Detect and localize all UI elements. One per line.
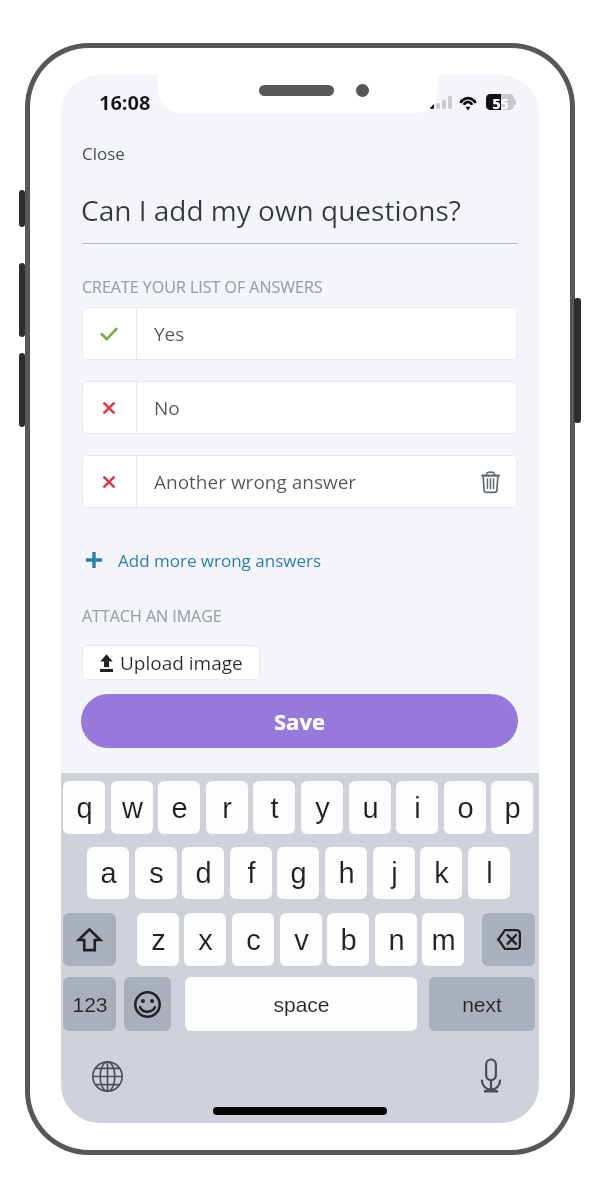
staticText: Another wrong answer <box>154 469 357 495</box>
button[interactable]: Voice input <box>471 1056 511 1096</box>
staticText: r <box>222 792 232 824</box>
button[interactable]: w <box>111 781 153 834</box>
staticText: m <box>431 924 456 956</box>
button[interactable]: Another wrong answer <box>82 455 517 508</box>
button[interactable]: space <box>185 977 417 1031</box>
button[interactable]: 123 <box>63 977 116 1031</box>
button[interactable]: o <box>444 781 486 834</box>
staticText: e <box>171 792 188 824</box>
staticText: d <box>195 857 212 889</box>
staticText: l <box>486 857 493 889</box>
staticText: c <box>246 924 261 956</box>
button[interactable]: Shift <box>63 913 116 966</box>
button[interactable]: t <box>253 781 295 834</box>
button[interactable]: d <box>182 847 224 899</box>
staticText: i <box>414 792 421 824</box>
staticText: a <box>100 857 117 889</box>
staticText: t <box>270 792 279 824</box>
staticText: h <box>338 857 355 889</box>
button[interactable]: h <box>325 847 367 899</box>
staticText: b <box>340 924 357 956</box>
button[interactable]: m <box>422 913 464 966</box>
button[interactable]: j <box>373 847 415 899</box>
staticText: n <box>388 924 405 956</box>
button[interactable]: n <box>375 913 417 966</box>
button[interactable]: e <box>158 781 200 834</box>
button[interactable]: Save <box>81 694 518 748</box>
button[interactable]: Change language <box>87 1056 127 1096</box>
staticText: z <box>151 924 166 956</box>
staticText: w <box>122 792 143 824</box>
staticText: 123 <box>72 993 108 1016</box>
button[interactable]: Upload image <box>82 645 260 680</box>
button[interactable]: Close <box>72 137 134 169</box>
button[interactable]: u <box>349 781 391 834</box>
button[interactable]: z <box>137 913 179 966</box>
staticText: y <box>315 792 330 824</box>
button[interactable]: r <box>206 781 248 834</box>
button[interactable]: y <box>301 781 343 834</box>
staticText: x <box>198 924 213 956</box>
staticText: s <box>149 857 164 889</box>
staticText: Add more wrong answers <box>118 549 322 572</box>
button[interactable]: Delete answer <box>473 465 507 499</box>
button[interactable]: Yes <box>82 307 517 360</box>
staticText: v <box>294 924 309 956</box>
button[interactable]: next <box>429 977 535 1031</box>
staticText: Can I add my own questions? <box>81 191 461 229</box>
button[interactable]: a <box>87 847 129 899</box>
button[interactable]: i <box>396 781 438 834</box>
staticText: j <box>391 857 398 889</box>
staticText: next <box>462 993 502 1016</box>
button[interactable]: b <box>327 913 369 966</box>
button[interactable]: Add more wrong answers <box>82 542 322 578</box>
button[interactable]: l <box>468 847 510 899</box>
button[interactable]: g <box>277 847 319 899</box>
staticText: u <box>362 792 379 824</box>
staticText: f <box>247 857 256 889</box>
staticText: ATTACH AN IMAGE <box>82 605 222 627</box>
button[interactable]: q <box>63 781 105 834</box>
staticText: Close <box>82 142 125 165</box>
staticText: 55 <box>492 94 509 110</box>
staticText: q <box>76 792 93 824</box>
button[interactable]: x <box>184 913 226 966</box>
staticText: Upload image <box>120 650 243 676</box>
button[interactable]: v <box>280 913 322 966</box>
button[interactable]: Emoji <box>124 977 171 1031</box>
staticText: CREATE YOUR LIST OF ANSWERS <box>82 276 323 298</box>
staticText: 16:08 <box>99 89 151 116</box>
staticText: No <box>154 395 180 421</box>
button[interactable]: s <box>135 847 177 899</box>
staticText: o <box>457 792 474 824</box>
staticText: Save <box>274 706 325 736</box>
staticText: p <box>504 792 521 824</box>
button[interactable]: No <box>82 381 517 434</box>
button[interactable]: c <box>232 913 274 966</box>
button[interactable]: f <box>230 847 272 899</box>
staticText: g <box>290 857 307 889</box>
button[interactable]: k <box>420 847 462 899</box>
staticText: Yes <box>154 321 185 347</box>
button[interactable]: p <box>491 781 533 834</box>
staticText: k <box>434 857 449 889</box>
button[interactable]: Backspace <box>482 913 535 966</box>
staticText: space <box>273 993 330 1016</box>
